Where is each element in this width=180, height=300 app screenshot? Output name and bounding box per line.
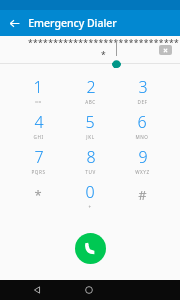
staticText: 5 [85, 111, 95, 133]
staticText: WXYZ [135, 169, 150, 175]
staticText: 9 [138, 146, 148, 168]
button[interactable]: # [116, 179, 168, 211]
button[interactable]: Clear [157, 42, 173, 58]
staticText: 3 [138, 76, 148, 98]
staticText: 1 [33, 76, 43, 98]
button[interactable]: Back [28, 281, 46, 299]
staticText: GHI [33, 134, 44, 140]
staticText: 8 [86, 146, 96, 168]
staticText: 6 [137, 111, 147, 133]
staticText: JKL [86, 134, 95, 140]
staticText: MNO [135, 134, 149, 140]
button[interactable]: 6 [116, 109, 168, 141]
button[interactable]: * [12, 179, 64, 211]
staticText: DEF [137, 99, 148, 105]
button[interactable]: Back [6, 15, 22, 31]
staticText: ******************************* [27, 37, 180, 61]
staticText: oo [35, 99, 42, 105]
staticText: * [34, 186, 42, 204]
button[interactable]: 9 [116, 144, 168, 176]
staticText: Emergency Dialer [28, 16, 117, 30]
button[interactable]: 8 [64, 144, 116, 176]
staticText: + [88, 204, 92, 210]
button[interactable]: 7 [12, 144, 64, 176]
button[interactable]: 3 [116, 74, 168, 106]
button[interactable]: 4 [12, 109, 64, 141]
staticText: ABC [85, 99, 96, 105]
staticText: 2 [86, 76, 96, 98]
staticText: 0 [85, 181, 95, 203]
button[interactable]: 0 [64, 179, 116, 211]
staticText: # [138, 186, 147, 204]
button[interactable]: Call [75, 233, 106, 264]
staticText: PQRS [31, 169, 46, 175]
staticText: 4 [34, 111, 44, 133]
button[interactable]: 2 [64, 74, 116, 106]
button[interactable]: 5 [64, 109, 116, 141]
button[interactable]: 1 [12, 74, 64, 106]
staticText: 7 [34, 146, 44, 168]
button[interactable]: Home [80, 281, 98, 299]
staticText: TUV [85, 169, 96, 175]
